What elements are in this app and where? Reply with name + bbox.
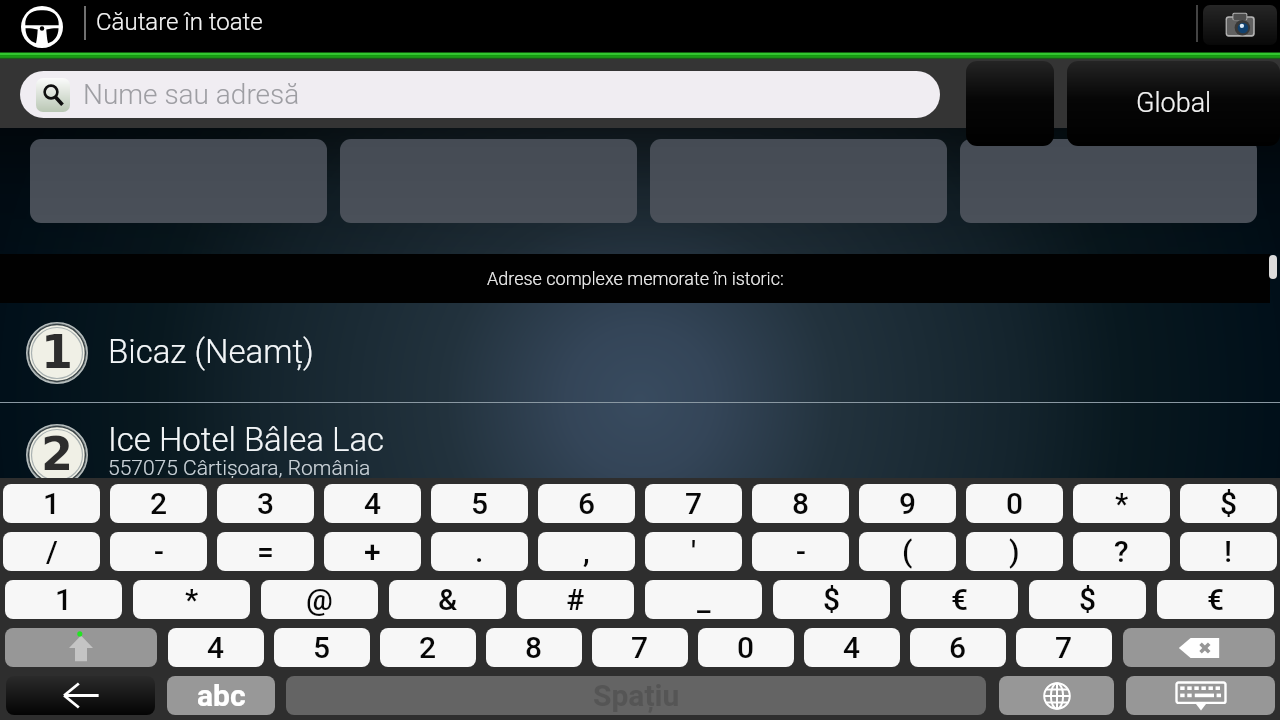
- staticText: 557075 Cârtișoara, România: [108, 456, 371, 481]
- staticText: #: [566, 582, 585, 617]
- staticText: *: [185, 582, 199, 617]
- button[interactable]: Quick destination: [960, 139, 1257, 223]
- staticText: 4: [364, 486, 382, 521]
- button[interactable]: 6: [910, 628, 1006, 667]
- button[interactable]: Search options: [966, 61, 1054, 146]
- button[interactable]: Back: [6, 676, 155, 715]
- staticText: (: [902, 534, 913, 569]
- button[interactable]: Global: [1067, 61, 1280, 146]
- button[interactable]: /: [3, 532, 100, 571]
- staticText: 8: [525, 630, 543, 665]
- staticText: .: [475, 534, 484, 569]
- button[interactable]: _: [645, 580, 762, 619]
- button[interactable]: *: [133, 580, 250, 619]
- button[interactable]: 0: [698, 628, 794, 667]
- staticText: !: [1224, 534, 1233, 569]
- button[interactable]: .: [431, 532, 528, 571]
- staticText: 2: [41, 427, 74, 481]
- button[interactable]: ): [966, 532, 1063, 571]
- staticText: abc: [197, 678, 246, 713]
- button[interactable]: Change keyboard language: [999, 676, 1114, 715]
- button[interactable]: Quick destination: [340, 139, 637, 223]
- button[interactable]: 4: [804, 628, 900, 667]
- button[interactable]: 1: [5, 580, 122, 619]
- button[interactable]: -: [110, 532, 207, 571]
- staticText: 1: [43, 486, 61, 521]
- button[interactable]: Navigation menu: [19, 4, 64, 49]
- staticText: Global: [1136, 87, 1212, 119]
- staticText: _: [697, 582, 711, 617]
- staticText: 0: [737, 630, 755, 665]
- button[interactable]: Backspace: [1123, 628, 1275, 667]
- button[interactable]: &: [389, 580, 506, 619]
- staticText: Căutare în toate: [96, 8, 263, 36]
- staticText: €: [951, 582, 969, 617]
- staticText: 6: [578, 486, 596, 521]
- button[interactable]: €: [901, 580, 1018, 619]
- staticText: 7: [685, 486, 703, 521]
- staticText: 2: [150, 486, 168, 521]
- staticText: &: [438, 582, 458, 617]
- staticText: 2: [419, 630, 437, 665]
- button[interactable]: Shift: [5, 628, 157, 667]
- staticText: 7: [1055, 630, 1073, 665]
- button[interactable]: 9: [859, 484, 956, 523]
- button[interactable]: 2: [380, 628, 476, 667]
- button[interactable]: +: [324, 532, 421, 571]
- button[interactable]: Quick destination: [650, 139, 947, 223]
- staticText: 6: [949, 630, 967, 665]
- button[interactable]: $: [773, 580, 890, 619]
- button[interactable]: $: [1180, 484, 1277, 523]
- button[interactable]: 4: [324, 484, 421, 523]
- staticText: 0: [1006, 486, 1024, 521]
- button[interactable]: Spațiu: [286, 676, 986, 715]
- button[interactable]: 4: [168, 628, 264, 667]
- button[interactable]: 2: [0, 403, 1280, 478]
- button[interactable]: €: [1157, 580, 1274, 619]
- button[interactable]: 5: [274, 628, 370, 667]
- button[interactable]: ?: [1073, 532, 1170, 571]
- button[interactable]: 7: [1016, 628, 1112, 667]
- button[interactable]: 8: [486, 628, 582, 667]
- button[interactable]: Camera search: [1203, 5, 1277, 45]
- button[interactable]: 8: [752, 484, 849, 523]
- staticText: Bicaz (Neamț): [108, 332, 314, 371]
- button[interactable]: 0: [966, 484, 1063, 523]
- staticText: 1: [41, 325, 74, 379]
- button[interactable]: @: [261, 580, 378, 619]
- staticText: ,: [583, 534, 590, 569]
- button[interactable]: 6: [538, 484, 635, 523]
- button[interactable]: Hide keyboard: [1126, 676, 1275, 715]
- staticText: Spațiu: [593, 678, 680, 713]
- staticText: 9: [899, 486, 917, 521]
- staticText: ): [1009, 534, 1020, 569]
- staticText: /: [46, 534, 58, 569]
- button[interactable]: 7: [645, 484, 742, 523]
- button[interactable]: 5: [431, 484, 528, 523]
- button[interactable]: (: [859, 532, 956, 571]
- button[interactable]: Nume sau adresă: [20, 71, 940, 118]
- staticText: $: [823, 582, 841, 617]
- staticText: $: [1079, 582, 1097, 617]
- button[interactable]: =: [217, 532, 314, 571]
- button[interactable]: 2: [110, 484, 207, 523]
- staticText: ?: [1114, 534, 1129, 569]
- button[interactable]: 1: [0, 303, 1280, 402]
- staticText: 4: [843, 630, 861, 665]
- button[interactable]: Quick destination: [30, 139, 327, 223]
- button[interactable]: 3: [217, 484, 314, 523]
- button[interactable]: #: [517, 580, 634, 619]
- staticText: 8: [792, 486, 810, 521]
- staticText: -: [796, 534, 806, 569]
- button[interactable]: 7: [592, 628, 688, 667]
- button[interactable]: !: [1180, 532, 1277, 571]
- staticText: -: [154, 534, 164, 569]
- button[interactable]: 1: [3, 484, 100, 523]
- staticText: €: [1207, 582, 1225, 617]
- button[interactable]: $: [1029, 580, 1146, 619]
- button[interactable]: ': [645, 532, 742, 571]
- button[interactable]: *: [1073, 484, 1170, 523]
- button[interactable]: ,: [538, 532, 635, 571]
- button[interactable]: abc: [167, 676, 275, 715]
- button[interactable]: -: [752, 532, 849, 571]
